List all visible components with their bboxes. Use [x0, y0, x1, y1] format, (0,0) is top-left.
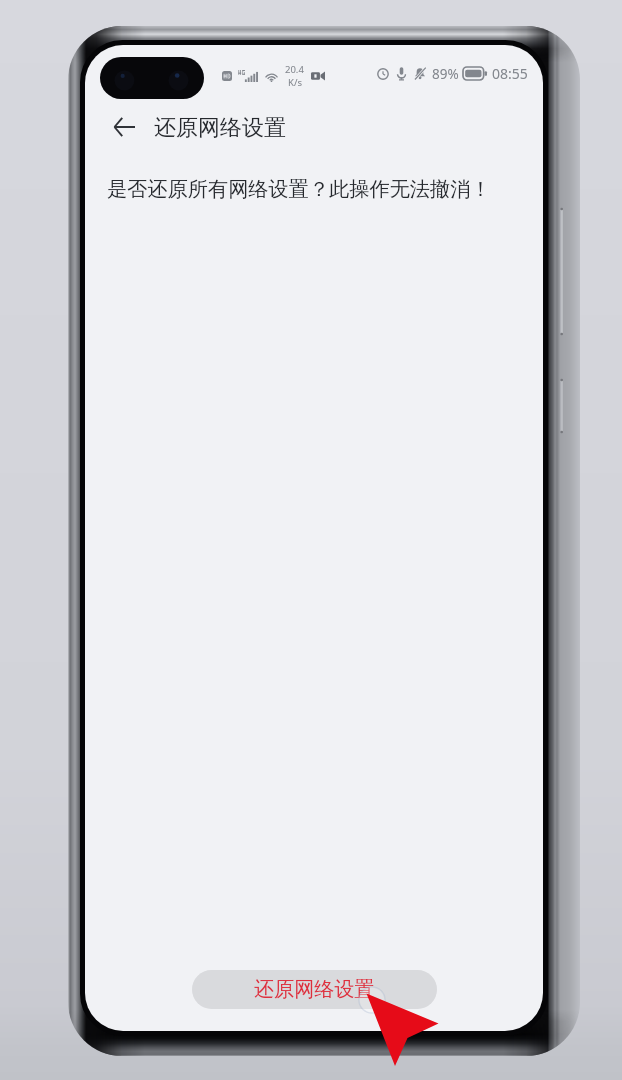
staticText: 还原网络设置 — [154, 114, 286, 142]
staticText: 还原网络设置 — [254, 977, 375, 1002]
staticText: 89% — [432, 65, 459, 83]
staticText: K/s — [288, 76, 302, 89]
button[interactable]: Back — [106, 110, 142, 146]
staticText: 是否还原所有网络设置？此操作无法撤消！ — [107, 177, 491, 202]
staticText: 08:55 — [492, 64, 528, 83]
button[interactable]: 还原网络设置 — [192, 970, 437, 1009]
staticText: 20.4 — [285, 63, 304, 76]
